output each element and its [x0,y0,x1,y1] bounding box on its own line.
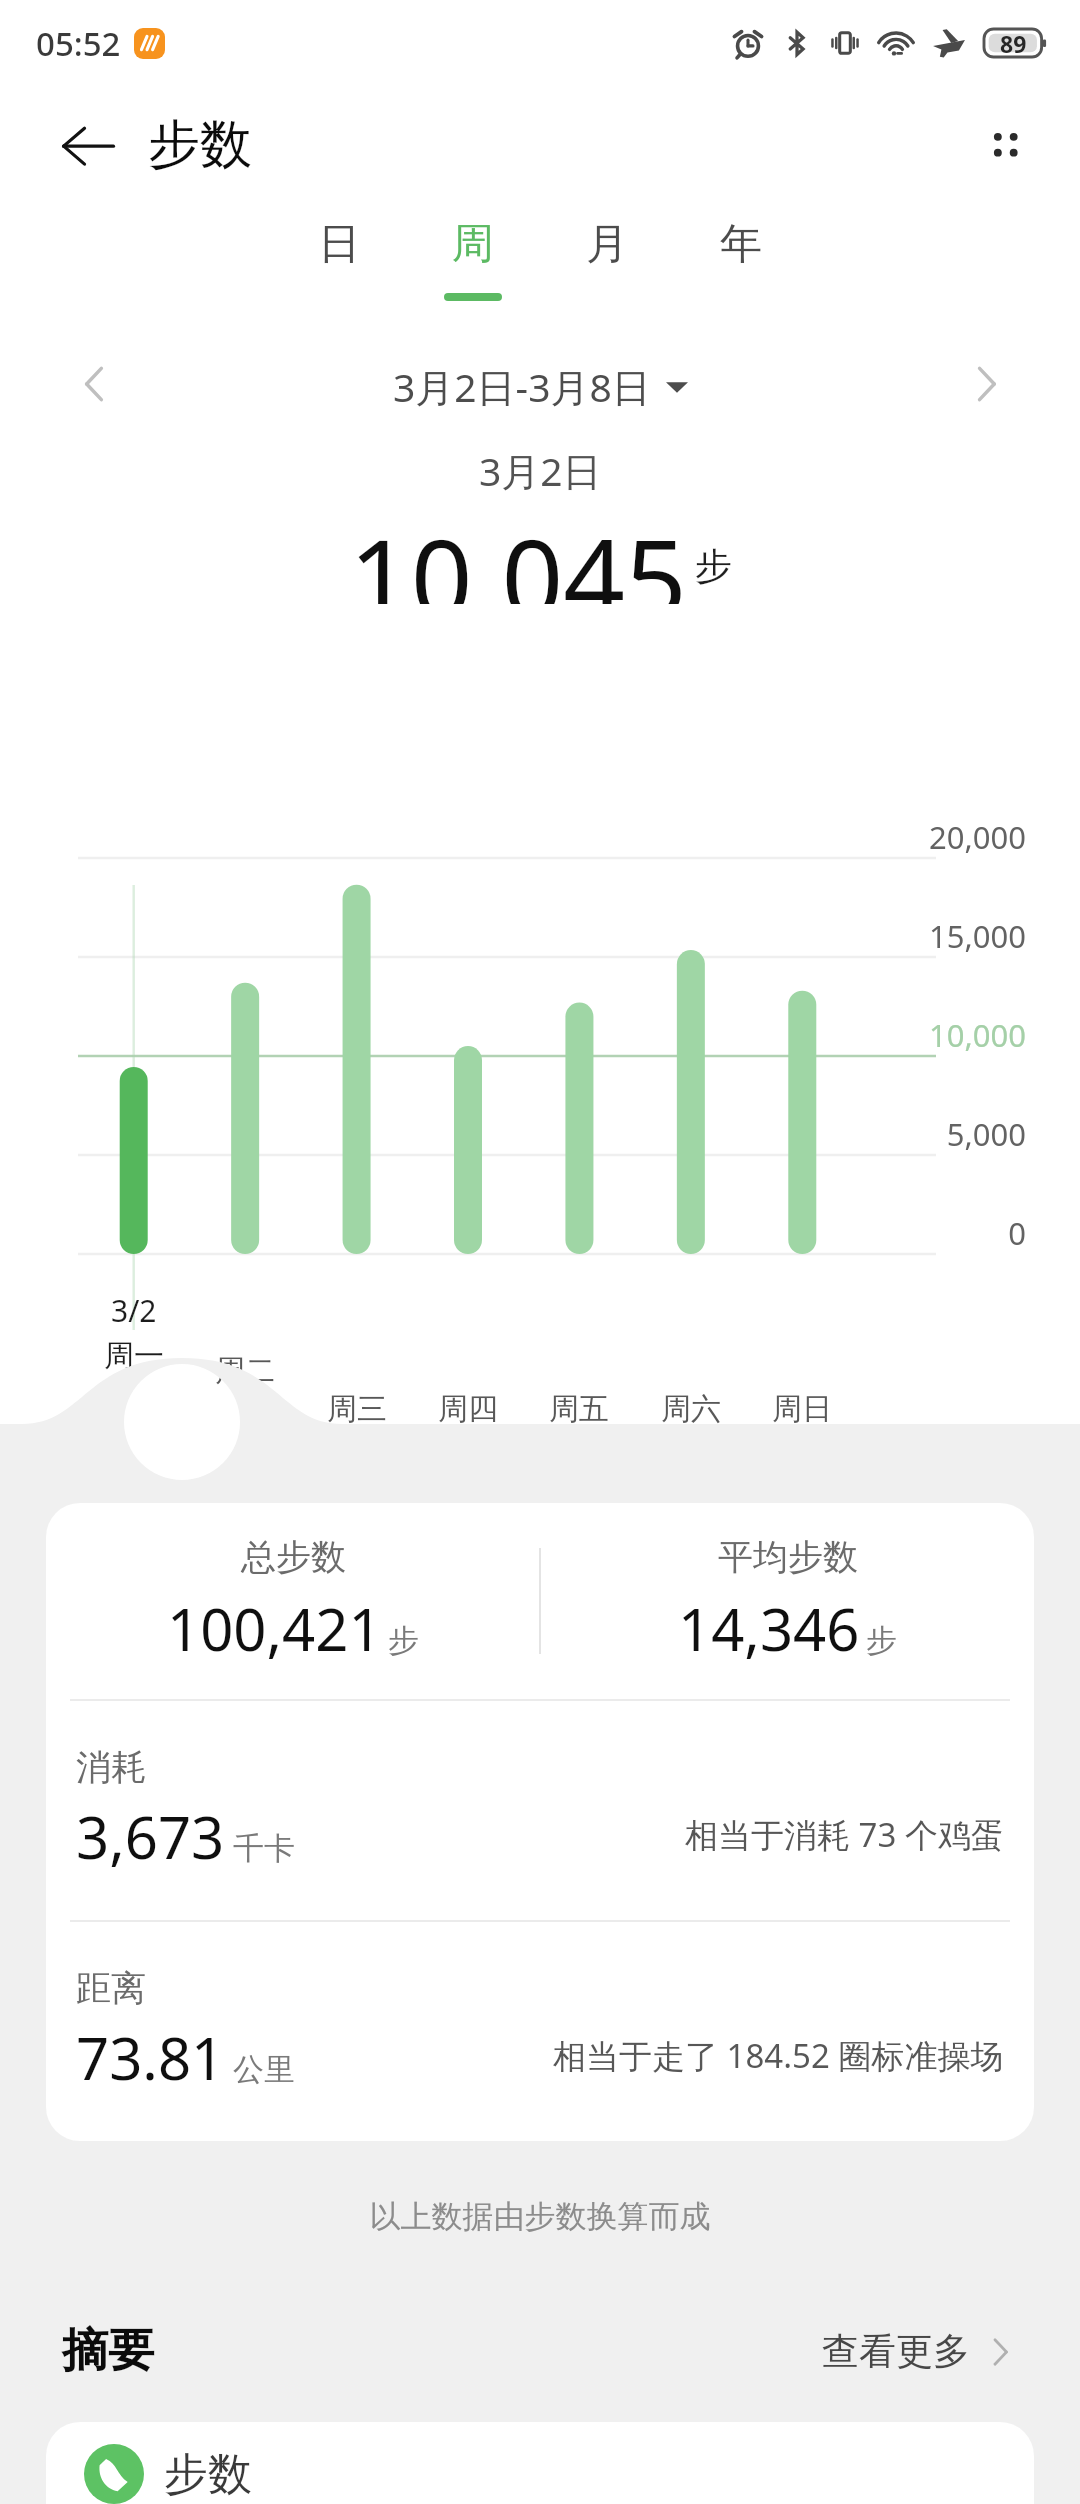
staticText: 周三 [297,1390,417,1428]
staticText: 73.81 [76,2018,225,2097]
staticText: 10,000 [866,1014,1026,1056]
staticText: 步数 [164,2447,252,2502]
staticText: 千卡 [233,1829,295,1868]
staticText: 步 [695,543,732,590]
staticText: 5,000 [866,1113,1026,1155]
staticText: 距离 [76,1966,146,2010]
staticText: 20,000 [866,816,1026,858]
button[interactable]: 步数 [46,2422,1034,2504]
button[interactable]: 年 [674,204,808,332]
staticText: 以上数据由步数换算而成 [0,2197,1080,2236]
staticText: 查看更多 [822,2328,970,2375]
staticText: 平均步数 [718,1535,858,1579]
staticText: 步数 [148,112,252,178]
staticText: 0 [866,1212,1026,1254]
staticText: 3月2日 [479,444,602,497]
staticText: 年 [720,218,762,271]
staticText: 周一 [104,1337,164,1375]
button[interactable]: Next week [946,344,1026,424]
staticText: 3,673 [76,1797,225,1876]
staticText: 相当于走了 184.52 圈标准操场 [553,2033,1004,2078]
staticText: 14,346 [678,1589,860,1668]
staticText: 15,000 [866,915,1026,957]
staticText: 10,045 [349,503,687,604]
staticText: 摘要 [62,2322,154,2380]
button[interactable]: Back [48,105,128,185]
staticText: 05:52 [36,21,121,66]
button[interactable]: 周 [406,204,540,332]
staticText: 公里 [233,2050,295,2089]
staticText: 3/2 [111,1290,157,1331]
button[interactable]: 3月2日-3月8日 [393,360,688,413]
staticText: 3月2日-3月8日 [393,360,651,413]
staticText: 周四 [408,1390,528,1428]
staticText: 100,421 [167,1589,382,1668]
button[interactable]: 月 [540,204,674,332]
staticText: 周六 [631,1390,751,1428]
staticText: 周 [452,218,494,271]
staticText: 周二 [185,1352,305,1390]
button[interactable]: 日 [272,204,406,332]
staticText: 月 [586,218,628,271]
button[interactable]: Previous week [54,344,134,424]
staticText: 总步数 [241,1535,346,1579]
staticText: 步 [866,1621,897,1660]
staticText: 相当于消耗 73 个鸡蛋 [685,1812,1004,1857]
staticText: 89 [1000,28,1027,59]
staticText: 消耗 [76,1745,146,1789]
staticText: 步 [388,1621,419,1660]
button[interactable]: More options [962,101,1050,189]
button[interactable]: 查看更多 [822,2328,1018,2375]
staticText: 周日 [742,1390,862,1428]
staticText: 日 [318,218,360,271]
staticText: 周五 [519,1390,639,1428]
